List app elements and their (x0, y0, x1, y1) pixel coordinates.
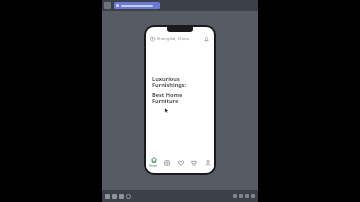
button[interactable]: Status 3 (245, 194, 249, 198)
button[interactable]: Tool 1 (105, 194, 110, 199)
button[interactable]: Menu (104, 2, 111, 9)
button[interactable]: Shanghai, China (150, 36, 202, 42)
staticText: Home (149, 164, 158, 168)
button[interactable]: Home (147, 156, 160, 169)
button[interactable]: Status 2 (239, 194, 243, 198)
button[interactable]: Profile (201, 156, 214, 169)
staticText: Best Home Furniture (152, 91, 208, 105)
button[interactable]: Status 1 (233, 194, 237, 198)
button[interactable]: Tool 2 (112, 194, 117, 199)
staticText: Luxurious Furnishings: (152, 75, 208, 89)
button[interactable]: Tool 3 (119, 194, 124, 199)
button[interactable]: Open project tab (114, 2, 160, 9)
staticText: Shanghai, China (157, 36, 189, 42)
button[interactable]: Notifications (202, 35, 210, 43)
button[interactable]: Favorites (174, 156, 187, 169)
button[interactable]: Tool 4 (126, 194, 131, 199)
button[interactable]: Cart (187, 156, 200, 169)
button[interactable]: Browse (160, 156, 173, 169)
button[interactable]: Status 4 (251, 194, 255, 198)
